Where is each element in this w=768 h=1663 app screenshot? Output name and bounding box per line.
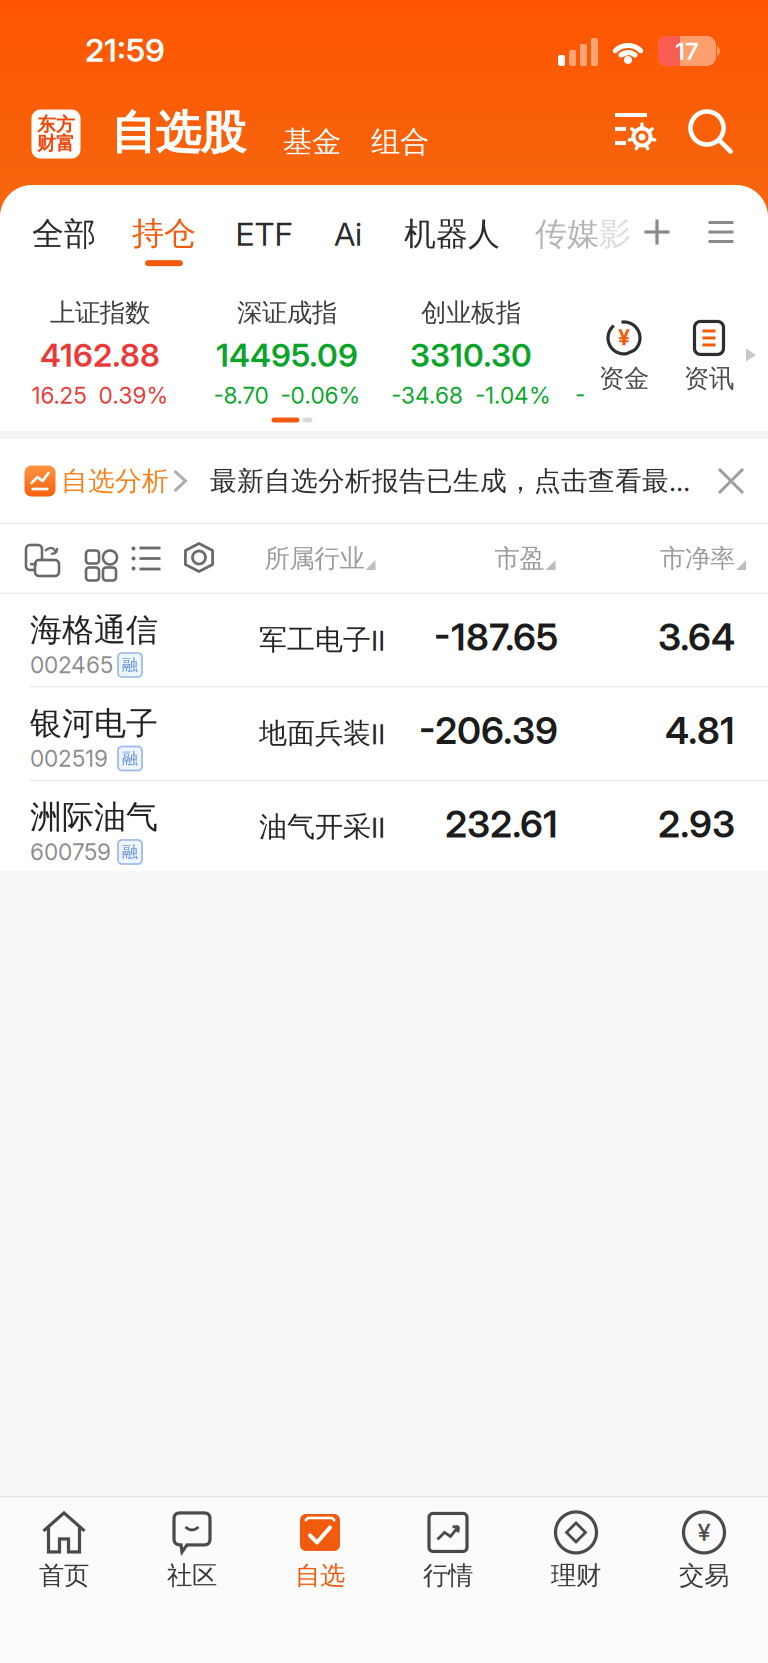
staticText: -187.65 [434,615,558,659]
button[interactable]: ¥ [599,318,649,394]
staticText: 4.81 [665,708,735,752]
staticText: 东方 [37,113,75,136]
button[interactable]: 资讯 [684,318,734,394]
staticText: 理财 [551,1560,601,1591]
staticText: 交易 [679,1560,729,1591]
button[interactable]: 全部 [32,192,96,276]
button[interactable]: 深证成指 [213,297,360,409]
staticText: 首页 [39,1560,89,1591]
button[interactable]: 管理自选 [615,113,657,153]
staticText: 002519 [30,745,108,772]
staticText: 影 [599,214,631,254]
staticText: 海格通信 [30,610,158,650]
button[interactable]: 持仓 [132,214,196,266]
staticText: 融 [122,655,138,675]
button[interactable]: 大字报价 [77,542,108,572]
button[interactable]: 列表模式 [131,546,160,570]
button[interactable]: 搜索 [688,109,733,154]
staticText: 600759 [30,839,111,865]
button[interactable]: 机器人 [404,192,500,276]
button[interactable]: 关闭 [719,469,743,493]
staticText: 16.25 0.39% [31,382,168,409]
staticText: 财富 [37,132,75,155]
button[interactable]: 上证指数 [31,297,168,409]
button[interactable]: 市净率 [660,543,746,574]
button[interactable]: 传媒 [535,192,631,276]
staticText: 银河电子 [30,704,158,743]
staticText: 洲际油气 [30,797,158,837]
staticText: 融 [122,842,138,862]
staticText: 创业板指 [421,297,521,328]
staticText: 行情 [423,1560,473,1591]
button[interactable]: 横屏 [21,541,55,573]
button[interactable]: 管理分组 [708,221,733,243]
staticText: 传媒 [535,214,599,254]
staticText: 持仓 [132,214,196,253]
staticText: 17 [675,37,699,65]
staticText: 资讯 [684,363,734,394]
staticText: 机器人 [404,214,500,254]
staticText: ETF [235,215,292,253]
staticText: 2.93 [658,802,735,846]
staticText: -34.68 -1.04% [391,382,551,409]
button[interactable]: 理财 [512,1503,640,1599]
staticText: 基金 [283,124,341,160]
button[interactable]: Ai [334,192,362,276]
button[interactable]: ETF [235,192,292,276]
button[interactable]: 自选 [256,1503,384,1599]
staticText: 自选股 [110,105,245,161]
button[interactable]: 银河电子 [0,687,768,779]
staticText: 市净率 [660,543,735,574]
staticText: 002465 [30,652,113,678]
staticText: 所属行业 [264,543,364,574]
staticText: 资金 [599,363,649,394]
button[interactable]: 自选分析 [0,439,700,523]
staticText: 最新自选分析报告已生成，点击查看最… [210,465,690,497]
staticText: 232.61 [445,802,558,846]
staticText: 融 [122,749,138,768]
button[interactable]: 首页 [0,1503,128,1599]
button[interactable]: 指标设置 [182,542,216,572]
button[interactable]: 创业板指 [391,297,551,409]
staticText: 上证指数 [50,297,150,328]
staticText: 军工电子Ⅱ [259,623,385,657]
button[interactable]: 组合 [371,124,429,160]
staticText: ¥ [618,325,630,350]
staticText: Ai [334,215,362,253]
staticText: 3310.30 [410,336,532,374]
button[interactable]: 所属行业 [264,543,375,574]
staticText: 社区 [167,1560,217,1591]
button[interactable]: 行情 [384,1503,512,1599]
staticText: 地面兵装Ⅱ [259,716,385,751]
staticText: 4162.88 [40,336,160,374]
staticText: - [575,381,585,407]
staticText: 全部 [32,214,96,254]
staticText: 3.64 [658,615,735,659]
staticText: -206.39 [419,708,558,752]
staticText: 自选分析 [61,465,169,497]
staticText: 自选 [295,1560,345,1591]
staticText: 油气开采Ⅱ [259,810,385,844]
button[interactable]: ¥ [640,1503,768,1599]
button[interactable]: 海格通信 [0,594,768,686]
button[interactable]: 洲际油气 [0,781,768,873]
button[interactable]: 添加分组 [644,219,669,244]
staticText: 组合 [371,124,429,160]
staticText: ¥ [697,1518,710,1546]
button[interactable]: 社区 [128,1503,256,1599]
staticText: 21:59 [85,31,165,69]
button[interactable]: 市盈 [494,543,555,574]
staticText: 14495.09 [216,336,358,374]
staticText: 市盈 [494,543,544,574]
staticText: 深证成指 [237,297,337,328]
button[interactable]: 基金 [283,124,341,160]
staticText: -8.70 -0.06% [213,382,360,409]
